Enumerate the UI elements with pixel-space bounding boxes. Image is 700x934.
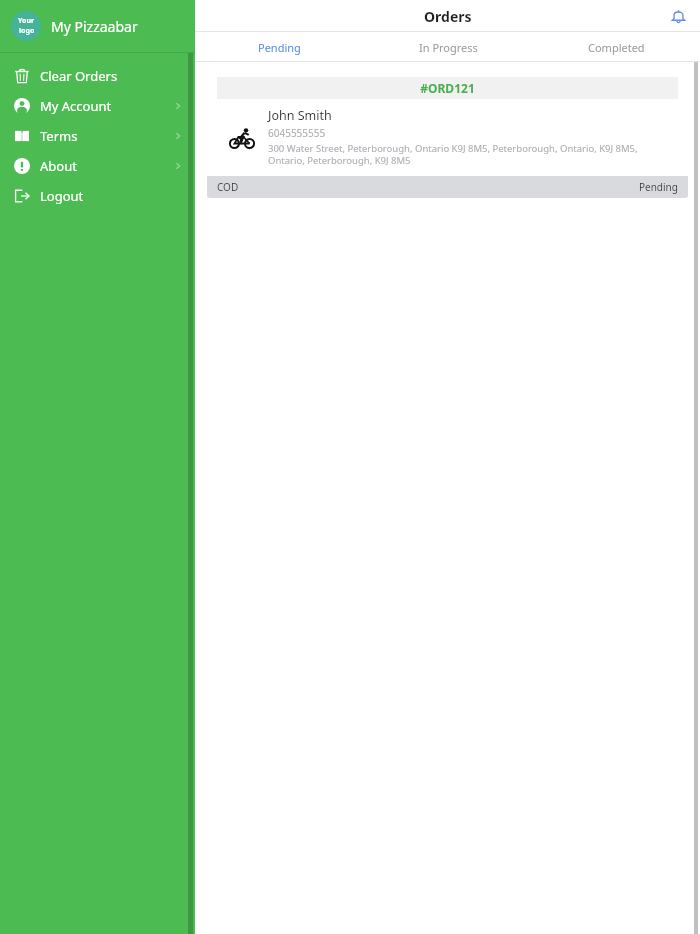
staticText: Pending [639, 180, 678, 194]
staticText: 6045555555 [268, 126, 326, 140]
staticText: My Pizzaabar [51, 17, 138, 36]
button[interactable]: Notifications [665, 3, 691, 29]
button[interactable]: Your [0, 0, 195, 52]
staticText: About [40, 157, 77, 175]
button[interactable]: Clear Orders [0, 61, 195, 91]
button[interactable]: #ORD121 [207, 77, 688, 198]
button[interactable]: In Progress [364, 32, 532, 62]
button[interactable]: Pending [195, 32, 364, 62]
staticText: John Smith [268, 107, 332, 124]
staticText: Your [18, 16, 35, 26]
staticText: Orders [424, 7, 472, 26]
staticText: COD [217, 180, 239, 194]
button[interactable]: About [0, 151, 195, 181]
staticText: 300 Water Street, Peterborough, Ontario … [268, 142, 676, 167]
button[interactable]: Completed [532, 32, 700, 62]
staticText: Completed [588, 40, 645, 55]
staticText: Clear Orders [40, 67, 118, 85]
staticText: My Account [40, 97, 112, 115]
button[interactable]: My Account [0, 91, 195, 121]
button[interactable]: Terms [0, 121, 195, 151]
button[interactable]: Logout [0, 181, 195, 211]
staticText: Pending [258, 40, 301, 55]
staticText: logo [19, 26, 35, 36]
staticText: Terms [40, 127, 78, 145]
staticText: Logout [40, 187, 84, 205]
staticText: In Progress [419, 40, 478, 55]
staticText: #ORD121 [420, 80, 475, 96]
